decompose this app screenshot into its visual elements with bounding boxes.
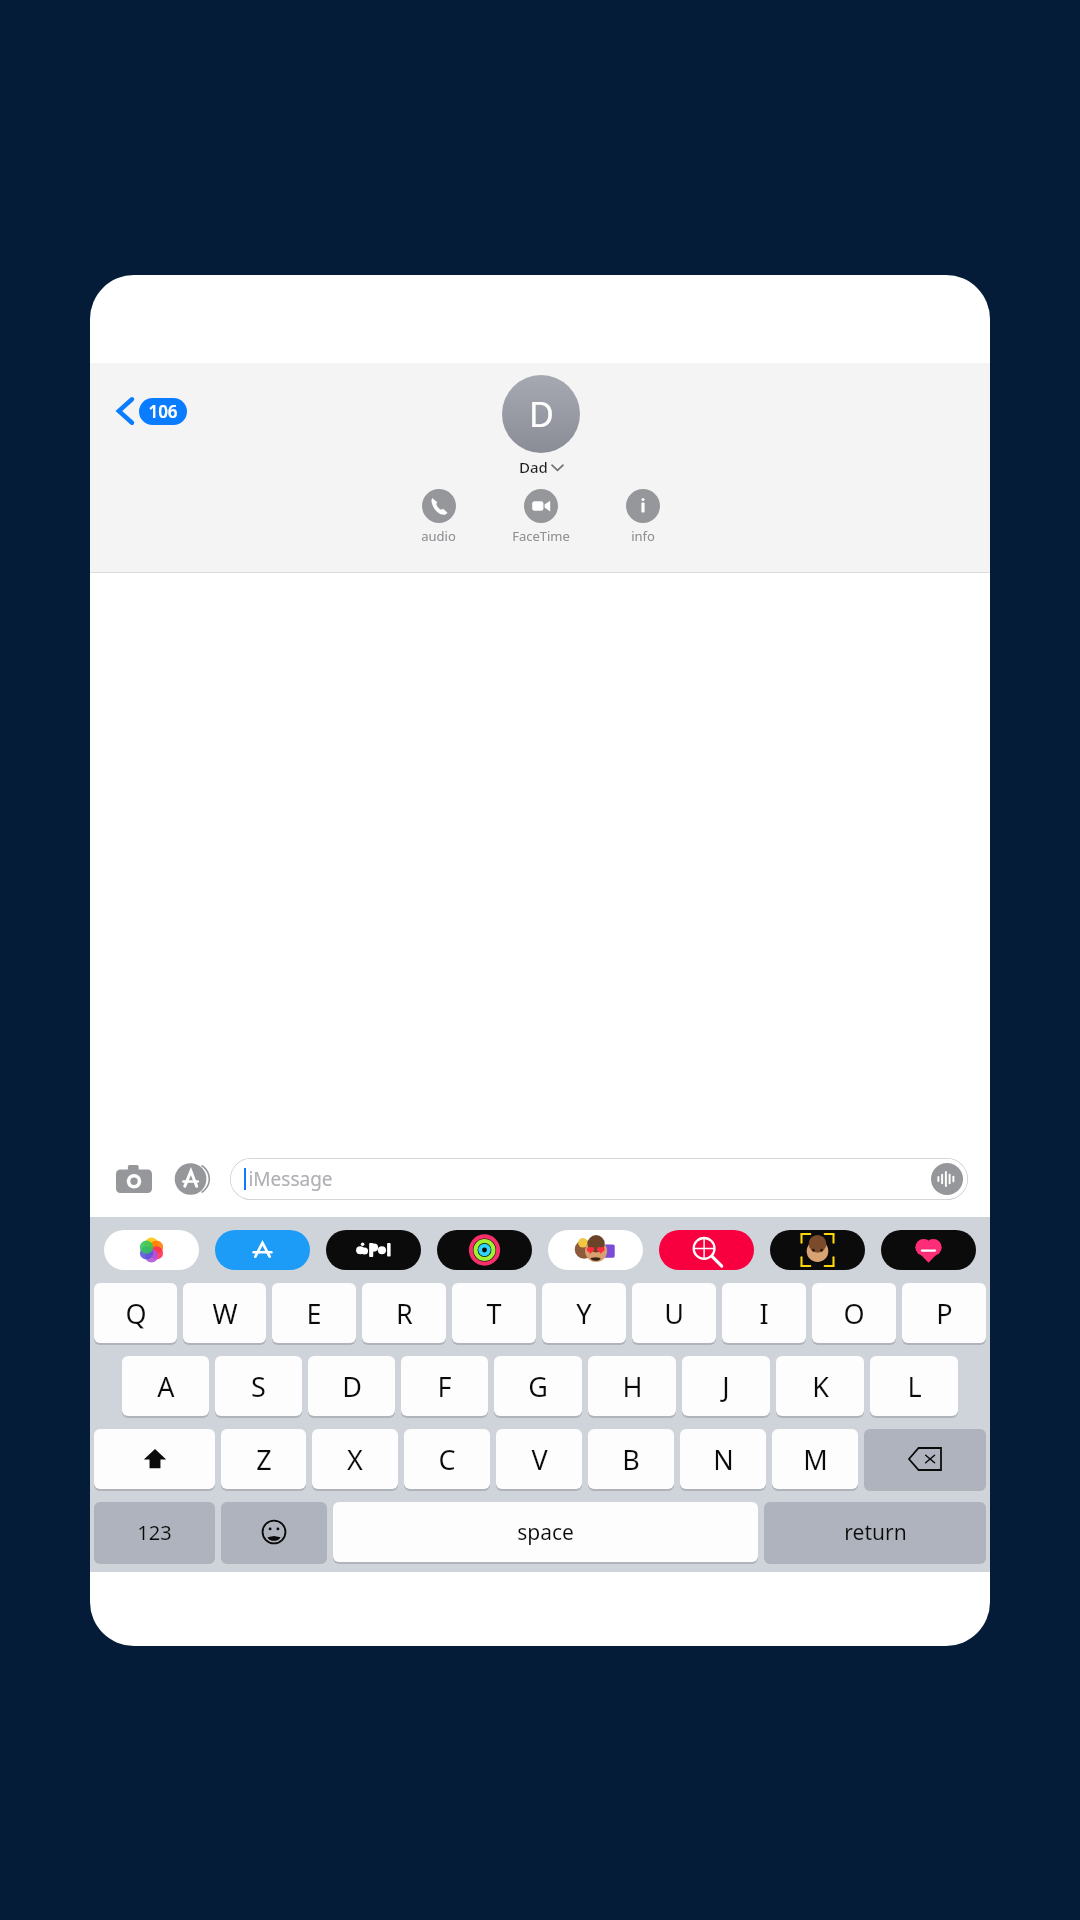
staticText: 123	[137, 1519, 172, 1546]
staticText: D	[529, 391, 554, 437]
staticText: U	[664, 1295, 684, 1332]
button[interactable]: Apple Pay	[326, 1230, 421, 1270]
button[interactable]: G	[494, 1356, 582, 1416]
button[interactable]: N	[680, 1429, 766, 1489]
button[interactable]: Back to 106 conversations	[112, 395, 191, 427]
button[interactable]: info	[626, 489, 660, 545]
button[interactable]	[94, 1429, 215, 1489]
button[interactable]: Digital Touch	[881, 1230, 976, 1270]
button[interactable]: 123	[94, 1502, 215, 1562]
button[interactable]: L	[870, 1356, 958, 1416]
button[interactable]: I	[722, 1283, 806, 1343]
staticText: L	[907, 1368, 922, 1405]
staticText: O	[843, 1295, 865, 1332]
button[interactable]: Memoji	[770, 1230, 865, 1270]
staticText: C	[438, 1441, 456, 1478]
staticText: Q	[125, 1295, 147, 1332]
button[interactable]: Photos	[104, 1230, 199, 1270]
button[interactable]: App Store	[215, 1230, 310, 1270]
staticText: 106	[148, 400, 178, 423]
button[interactable]: U	[632, 1283, 716, 1343]
other: Emoji keyboard	[221, 1502, 327, 1564]
button[interactable]: X	[312, 1429, 398, 1489]
button[interactable]: O	[812, 1283, 896, 1343]
button[interactable]: Y	[542, 1283, 626, 1343]
button[interactable]: S	[215, 1356, 302, 1416]
button[interactable]: V	[496, 1429, 582, 1489]
staticText: M	[803, 1441, 828, 1478]
staticText: T	[486, 1295, 502, 1332]
button[interactable]: space	[333, 1502, 758, 1562]
button[interactable]: E	[272, 1283, 356, 1343]
button[interactable]: M	[772, 1429, 858, 1489]
staticText: V	[531, 1441, 548, 1478]
staticText: FaceTime	[512, 527, 570, 545]
other: Shift	[94, 1429, 215, 1491]
staticText: Z	[256, 1441, 272, 1478]
staticText: E	[306, 1295, 322, 1332]
button[interactable]: return	[764, 1502, 986, 1562]
staticText: K	[812, 1368, 829, 1405]
staticText: F	[437, 1368, 452, 1405]
staticText: D	[342, 1368, 362, 1405]
other: Backspace	[864, 1429, 986, 1491]
button[interactable]: App Store	[170, 1157, 214, 1201]
button[interactable]: Fitness	[437, 1230, 532, 1270]
staticText: G	[528, 1368, 548, 1405]
staticText: return	[844, 1518, 907, 1547]
staticText: iMessage	[248, 1166, 333, 1192]
staticText: X	[347, 1441, 363, 1478]
button[interactable]: D	[308, 1356, 395, 1416]
staticText: space	[517, 1518, 574, 1547]
staticText: I	[759, 1295, 769, 1332]
staticText: A	[157, 1368, 175, 1405]
staticText: info	[631, 527, 655, 545]
button[interactable]: Memoji stickers	[548, 1230, 643, 1270]
staticText: audio	[421, 527, 456, 545]
button[interactable]: C	[404, 1429, 490, 1489]
staticText: P	[936, 1295, 953, 1332]
button[interactable]: W	[183, 1283, 266, 1343]
staticText: J	[722, 1368, 730, 1405]
button[interactable]: Record audio message	[931, 1163, 963, 1195]
button[interactable]: P	[902, 1283, 986, 1343]
button[interactable]	[864, 1429, 986, 1489]
button[interactable]: H	[588, 1356, 676, 1416]
staticText: S	[251, 1368, 266, 1405]
button[interactable]: K	[776, 1356, 864, 1416]
button[interactable]: B	[588, 1429, 674, 1489]
button[interactable]: Images	[659, 1230, 754, 1270]
staticText: W	[212, 1295, 238, 1332]
staticText: B	[622, 1441, 640, 1478]
button[interactable]: Dad	[519, 457, 563, 477]
button[interactable]: iMessage	[230, 1158, 968, 1200]
button[interactable]: Camera	[112, 1157, 156, 1201]
button[interactable]: FaceTime	[512, 489, 570, 545]
button[interactable]: J	[682, 1356, 770, 1416]
button[interactable]: T	[452, 1283, 536, 1343]
button[interactable]: Q	[94, 1283, 177, 1343]
staticText: R	[396, 1295, 413, 1332]
staticText: N	[713, 1441, 734, 1478]
staticText: H	[622, 1368, 643, 1405]
button[interactable]	[221, 1502, 327, 1562]
button[interactable]: R	[362, 1283, 446, 1343]
button[interactable]: audio	[421, 489, 456, 545]
staticText: Y	[576, 1295, 592, 1332]
staticText: Dad	[519, 457, 548, 477]
button[interactable]: F	[401, 1356, 488, 1416]
button[interactable]: Z	[221, 1429, 306, 1489]
button[interactable]: Dad avatar	[502, 375, 580, 453]
button[interactable]: A	[122, 1356, 209, 1416]
